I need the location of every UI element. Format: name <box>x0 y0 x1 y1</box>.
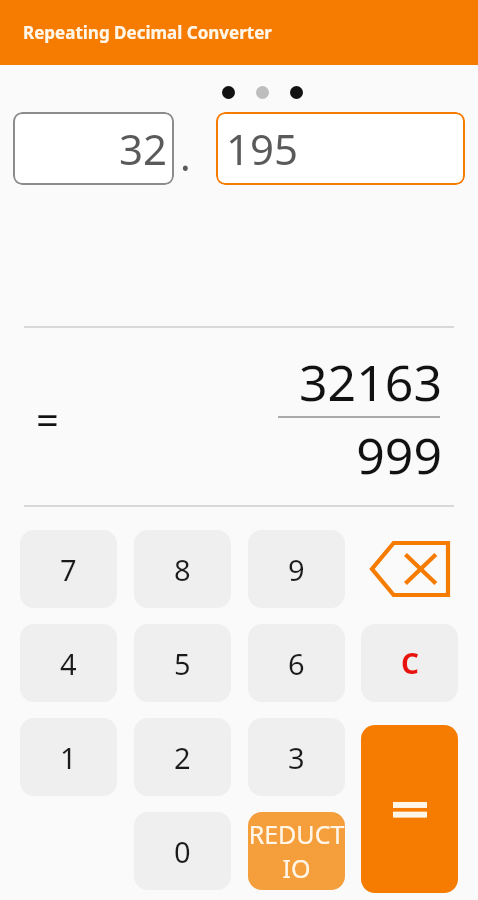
button[interactable]: Backspace <box>361 530 458 608</box>
button[interactable]: 8 <box>134 530 231 608</box>
staticText: REDUCTIO <box>248 817 345 885</box>
staticText: 0 <box>174 832 191 871</box>
button[interactable]: 0 <box>134 812 231 890</box>
button[interactable]: Equals <box>361 725 458 893</box>
staticText: 32 <box>119 120 168 177</box>
staticText: C <box>401 644 419 682</box>
staticText: Repeating Decimal Converter <box>23 21 272 44</box>
staticText: 5 <box>174 644 191 683</box>
staticText: 4 <box>60 644 77 683</box>
button[interactable]: 9 <box>248 530 345 608</box>
button[interactable]: Integer part <box>13 112 174 185</box>
staticText: 6 <box>288 644 305 683</box>
button[interactable]: 5 <box>134 624 231 702</box>
button[interactable]: 3 <box>248 718 345 796</box>
staticText: 8 <box>174 550 191 589</box>
staticText: 195 <box>226 120 299 177</box>
staticText: 9 <box>288 550 305 589</box>
staticText: 2 <box>174 738 191 777</box>
button[interactable]: 4 <box>20 624 117 702</box>
button[interactable]: 1 <box>20 718 117 796</box>
staticText: = <box>36 392 59 446</box>
button[interactable]: 7 <box>20 530 117 608</box>
button[interactable]: 2 <box>134 718 231 796</box>
staticText: 3 <box>288 738 305 777</box>
staticText: 32163 <box>299 348 442 416</box>
staticText: . <box>180 128 191 182</box>
staticText: 999 <box>356 421 442 489</box>
button[interactable]: C <box>361 624 458 702</box>
button[interactable]: 6 <box>248 624 345 702</box>
staticText: 7 <box>60 550 77 589</box>
staticText: 1 <box>60 738 77 777</box>
button[interactable]: REDUCTIO <box>248 812 345 890</box>
button[interactable]: Repeating part <box>216 112 465 185</box>
